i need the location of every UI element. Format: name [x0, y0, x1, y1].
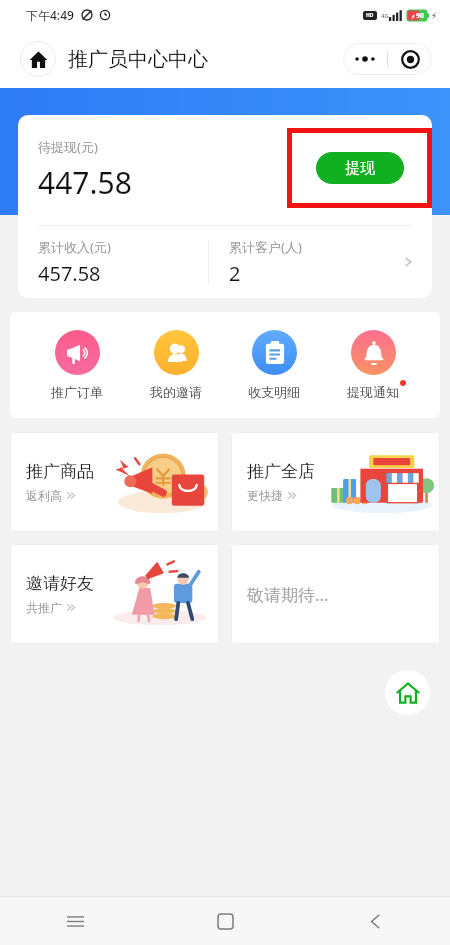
- button[interactable]: 累计收入(元): [18, 226, 432, 298]
- button[interactable]: Home: [150, 897, 300, 945]
- staticText: 共推广: [26, 600, 62, 615]
- button[interactable]: Target: [388, 43, 432, 75]
- button[interactable]: Home: [385, 670, 430, 715]
- staticText: 推广全店: [247, 461, 315, 482]
- staticText: 90: [416, 11, 425, 21]
- staticText: 推广商品: [26, 461, 94, 482]
- staticText: 更快捷: [247, 488, 283, 503]
- staticText: 我的邀请: [150, 384, 202, 400]
- staticText: 累计客户(人): [229, 238, 302, 256]
- staticText: 推广员中心中心: [68, 47, 208, 72]
- button[interactable]: Recents: [0, 897, 150, 945]
- button[interactable]: 推广商品: [10, 432, 219, 532]
- staticText: 待提现(元): [38, 138, 98, 156]
- staticText: 457.58: [38, 260, 101, 287]
- button[interactable]: 推广订单: [45, 330, 109, 400]
- button[interactable]: 敬请期待...: [231, 544, 440, 644]
- staticText: 提现通知: [347, 384, 399, 400]
- staticText: 下午4:49: [26, 7, 74, 23]
- button[interactable]: 我的邀请: [144, 330, 208, 400]
- button[interactable]: 收支明细: [242, 330, 306, 400]
- button[interactable]: 提现通知: [341, 330, 405, 400]
- button[interactable]: 邀请好友: [10, 544, 219, 644]
- staticText: 返利高: [26, 488, 62, 503]
- staticText: 收支明细: [248, 384, 300, 400]
- staticText: HD: [366, 12, 374, 19]
- staticText: 累计收入(元): [38, 238, 111, 256]
- button[interactable]: More: [343, 43, 387, 75]
- button[interactable]: Home: [20, 41, 56, 77]
- staticText: ⚡: [411, 13, 416, 20]
- staticText: 提现: [345, 159, 375, 178]
- staticText: 敬请期待...: [247, 583, 329, 606]
- staticText: 推广订单: [51, 384, 103, 400]
- button[interactable]: 提现: [316, 152, 404, 184]
- staticText: 4G: [381, 12, 389, 20]
- button[interactable]: 推广全店: [231, 432, 440, 532]
- staticText: 2: [229, 260, 241, 287]
- staticText: ⚡: [431, 11, 438, 21]
- staticText: 邀请好友: [26, 573, 94, 594]
- button[interactable]: Back: [300, 897, 450, 945]
- staticText: 447.58: [38, 162, 132, 203]
